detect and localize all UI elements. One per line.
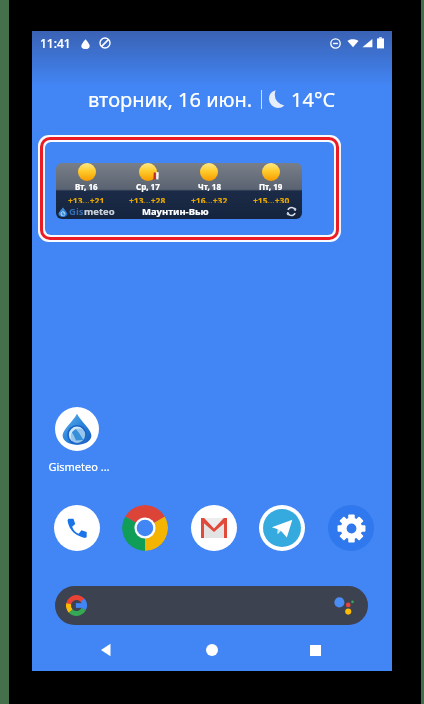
staticText: +16...+32: [191, 195, 228, 203]
staticText: Gis: [69, 205, 84, 218]
button[interactable]: Вт, 16: [56, 163, 117, 203]
staticText: Чт, 18: [198, 181, 221, 192]
button[interactable]: Google Search: [55, 586, 368, 625]
staticText: 11:41: [40, 35, 71, 51]
button[interactable]: Refresh: [286, 206, 297, 217]
button[interactable]: Telegram: [259, 505, 305, 551]
staticText: 14°C: [291, 86, 336, 112]
button[interactable]: Ср, 17: [117, 163, 178, 203]
staticText: Gismeteo ...: [48, 459, 110, 474]
staticText: Вт, 16: [75, 181, 98, 192]
staticText: Маунтин-Вью: [142, 205, 209, 218]
button[interactable]: Recents: [293, 628, 337, 672]
button[interactable]: Home: [190, 628, 234, 672]
button[interactable]: Чт, 18: [178, 163, 240, 203]
staticText: вторник, 16 июн.: [88, 86, 253, 112]
button[interactable]: Gmail: [191, 505, 237, 551]
button[interactable]: Chrome: [122, 505, 168, 551]
button[interactable]: Back: [84, 628, 128, 672]
other: Google Search: [66, 595, 87, 616]
staticText: Ср, 17: [136, 181, 160, 192]
staticText: +13...+28: [129, 195, 166, 203]
staticText: Пт, 19: [259, 181, 283, 192]
staticText: +13...+21: [68, 195, 105, 203]
other: Google Assistant: [334, 597, 352, 615]
button[interactable]: Пт, 19: [240, 163, 302, 203]
button[interactable]: Settings: [328, 505, 374, 551]
button[interactable]: Phone: [54, 505, 100, 551]
staticText: meteo: [84, 205, 115, 218]
staticText: +15...+30: [253, 195, 290, 203]
button[interactable]: Gismeteo ...: [40, 407, 118, 474]
